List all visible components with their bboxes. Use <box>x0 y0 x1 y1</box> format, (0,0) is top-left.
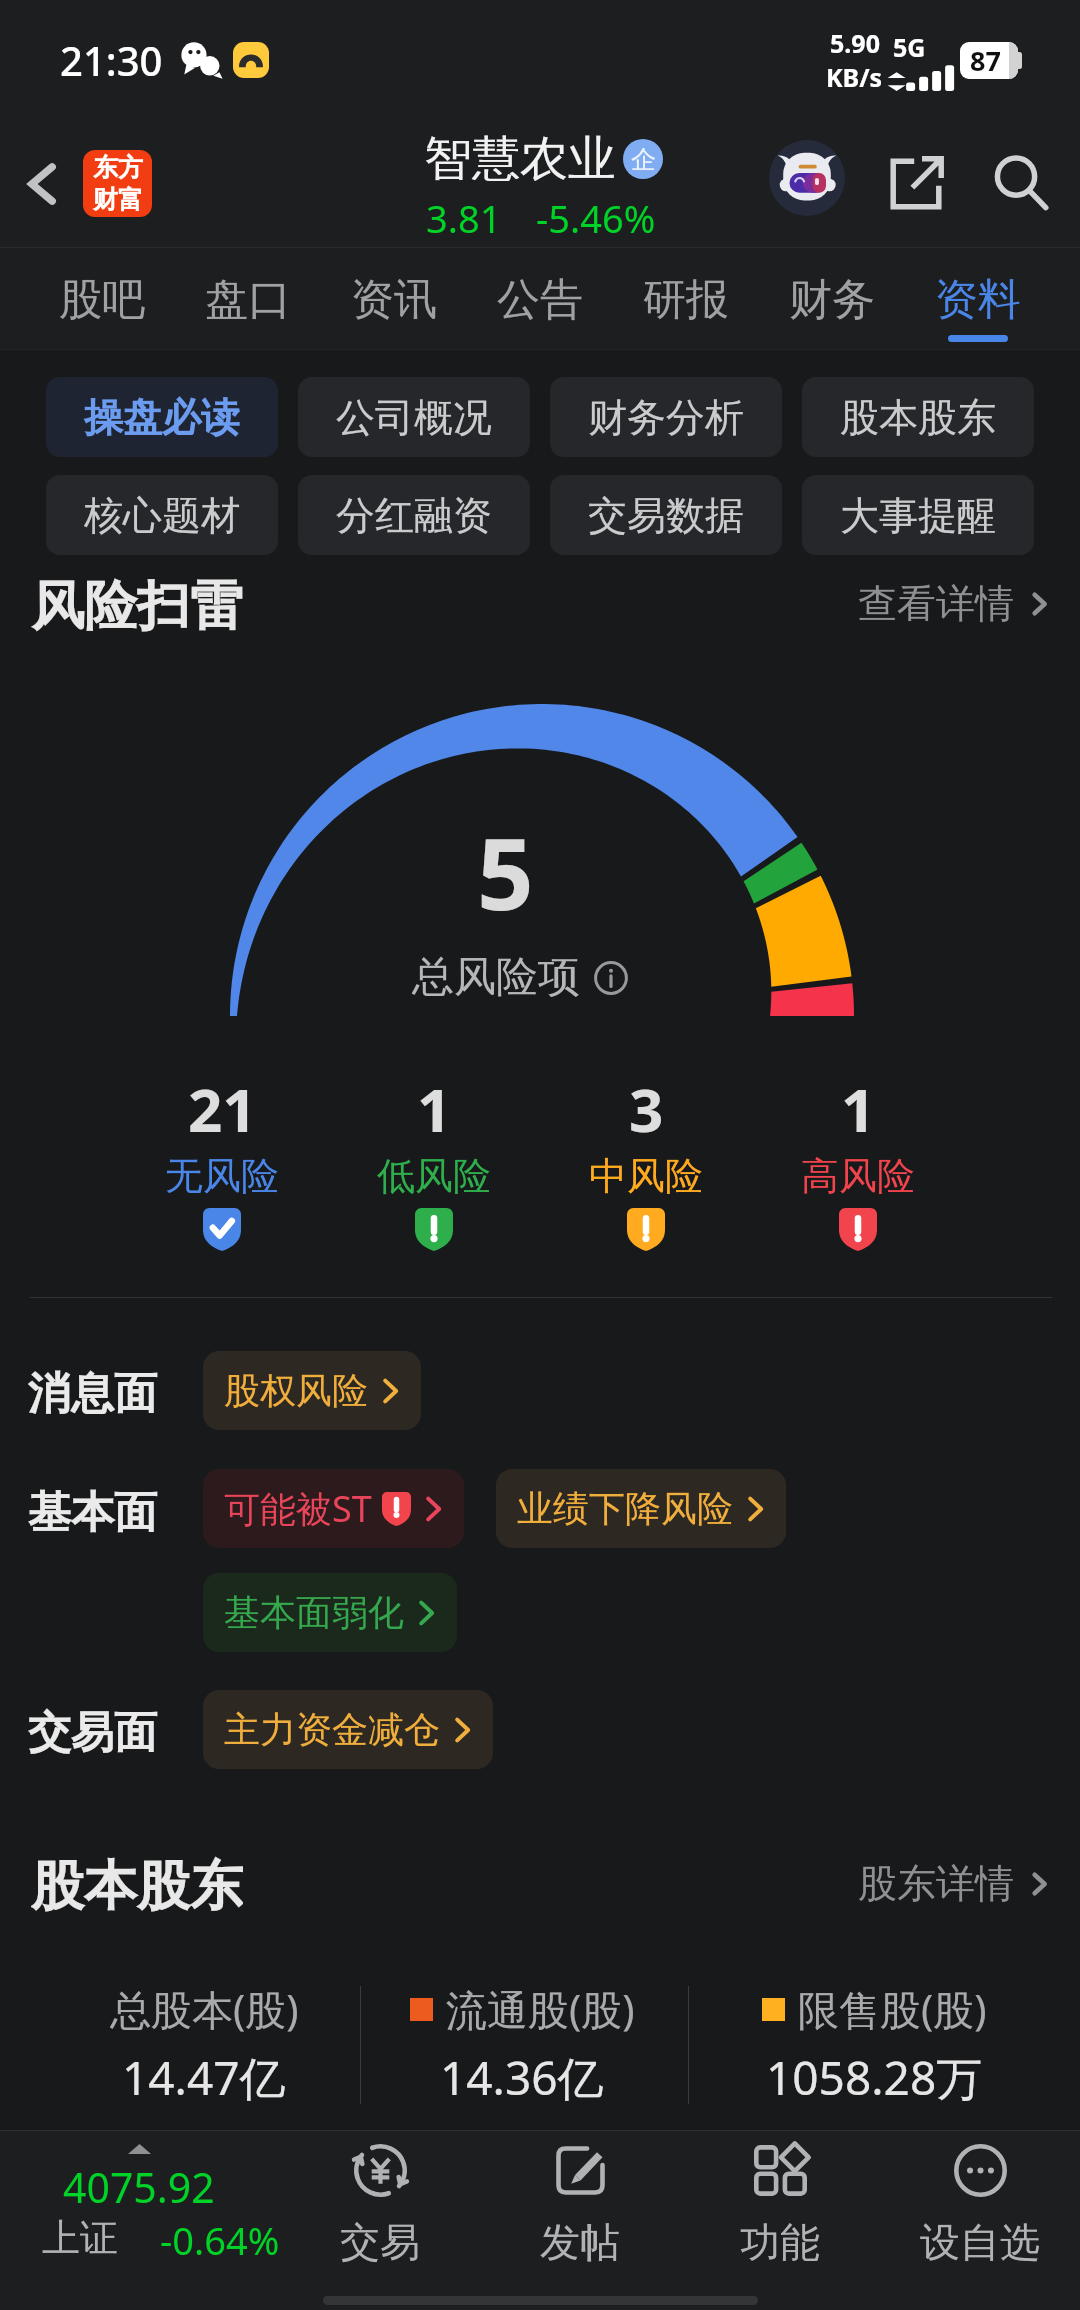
staticText: 股本股东 <box>31 1853 243 1913</box>
button[interactable]: 设自选 <box>880 2130 1080 2280</box>
button[interactable]: 股吧 <box>59 247 145 350</box>
button[interactable]: 股本股东 <box>802 377 1034 457</box>
button[interactable]: 核心题材 <box>46 475 278 555</box>
staticText: 基本面弱化 <box>224 1590 404 1635</box>
staticText: 流通股(股) <box>446 1981 635 2037</box>
staticText: 21:30 <box>60 33 163 87</box>
staticText: 4075.92 <box>63 2159 215 2215</box>
staticText: 14.47亿 <box>122 2046 286 2109</box>
button[interactable]: 交易 <box>280 2130 480 2280</box>
staticText: 交易数据 <box>588 491 744 540</box>
staticText: 智慧农业 <box>424 129 616 189</box>
staticText: 1 <box>841 1068 876 1150</box>
button[interactable]: 发帖 <box>480 2130 680 2280</box>
staticText: 财富 <box>93 184 143 215</box>
staticText: 21 <box>188 1068 257 1150</box>
staticText: 财务 <box>789 273 875 327</box>
staticText: 中风险 <box>589 1152 703 1200</box>
button[interactable]: Search <box>986 149 1056 219</box>
button[interactable]: 1 <box>328 1068 540 1251</box>
staticText: 股东详情 <box>858 1859 1014 1908</box>
staticText: 1 <box>417 1068 452 1150</box>
button[interactable]: 功能 <box>680 2130 880 2280</box>
staticText: 低风险 <box>377 1152 491 1200</box>
button[interactable]: 3 <box>540 1068 752 1251</box>
staticText: 上证 <box>42 2214 118 2262</box>
staticText: 主力资金减仓 <box>224 1707 440 1752</box>
button[interactable]: 分红融资 <box>298 475 530 555</box>
staticText: 设自选 <box>920 2217 1040 2267</box>
button[interactable]: 资讯 <box>351 247 437 350</box>
button[interactable]: AI assistant <box>769 140 845 216</box>
staticText: 资讯 <box>351 273 437 327</box>
staticText: 股吧 <box>59 273 145 327</box>
button[interactable]: 21 <box>116 1068 328 1251</box>
staticText: KB/s <box>826 60 883 94</box>
staticText: 企 <box>631 144 656 175</box>
staticText: 高风险 <box>801 1152 915 1200</box>
button[interactable]: 交易数据 <box>550 475 782 555</box>
staticText: 无风险 <box>165 1152 279 1200</box>
staticText: 股本股东 <box>840 393 996 442</box>
button[interactable]: Back <box>0 120 86 247</box>
staticText: 1058.28万 <box>766 2046 983 2109</box>
button[interactable]: 业绩下降风险 <box>496 1469 786 1548</box>
staticText: 股权风险 <box>224 1368 368 1413</box>
staticText: 业绩下降风险 <box>517 1486 733 1531</box>
button[interactable]: 限售股(股) <box>674 1975 1074 2110</box>
button[interactable]: 可能被ST <box>203 1469 464 1548</box>
button[interactable]: 流通股(股) <box>322 1975 722 2110</box>
staticText: -0.64% <box>160 2214 280 2266</box>
staticText: 3.81 <box>426 192 502 244</box>
staticText: 总风险项 <box>412 951 580 1004</box>
staticText: 功能 <box>740 2217 820 2267</box>
button[interactable]: 主力资金减仓 <box>203 1690 493 1769</box>
staticText: 87 <box>970 42 1001 79</box>
staticText: 核心题材 <box>84 491 240 540</box>
staticText: 5G <box>893 30 926 64</box>
staticText: 风险扫雷 <box>31 573 243 633</box>
staticText: 资料 <box>935 273 1021 327</box>
button[interactable]: 研报 <box>643 247 729 350</box>
staticText: 发帖 <box>540 2217 620 2267</box>
button[interactable]: 公司概况 <box>298 377 530 457</box>
button[interactable]: 4075.92 <box>0 2130 284 2280</box>
staticText: 消息面 <box>28 1367 157 1421</box>
staticText: 可能被ST <box>224 1484 372 1533</box>
button[interactable]: 财务 <box>789 247 875 350</box>
button[interactable]: Share <box>881 149 951 219</box>
button[interactable]: 资料 <box>935 247 1021 350</box>
button[interactable]: 总风险项 <box>412 951 628 1004</box>
button[interactable]: 基本面弱化 <box>203 1573 457 1652</box>
button[interactable]: 公告 <box>497 247 583 350</box>
staticText: -5.46% <box>536 192 656 244</box>
button[interactable]: 大事提醒 <box>802 475 1034 555</box>
button[interactable]: 1 <box>752 1068 964 1251</box>
staticText: 大事提醒 <box>840 491 996 540</box>
staticText: 5.90 <box>830 26 880 60</box>
staticText: 总股本(股) <box>110 1981 299 2037</box>
staticText: 研报 <box>643 273 729 327</box>
button[interactable]: 查看详情 <box>858 579 1050 628</box>
button[interactable]: 总股本(股) <box>4 1975 404 2110</box>
button[interactable]: 股权风险 <box>203 1351 421 1430</box>
staticText: 限售股(股) <box>798 1981 987 2037</box>
staticText: 东方 <box>93 152 143 183</box>
staticText: 基本面 <box>28 1486 157 1540</box>
staticText: 14.36亿 <box>440 2046 604 2109</box>
staticText: 公告 <box>497 273 583 327</box>
button[interactable]: 盘口 <box>205 247 291 350</box>
staticText: 查看详情 <box>858 579 1014 628</box>
button[interactable]: East Money <box>83 150 152 217</box>
button[interactable]: 股东详情 <box>858 1859 1050 1908</box>
button[interactable]: 操盘必读 <box>46 377 278 457</box>
button[interactable]: 财务分析 <box>550 377 782 457</box>
staticText: 财务分析 <box>588 393 744 442</box>
staticText: 操盘必读 <box>84 393 240 442</box>
staticText: 盘口 <box>205 273 291 327</box>
staticText: 5 <box>477 804 534 939</box>
staticText: 3 <box>629 1068 664 1150</box>
staticText: 交易面 <box>28 1706 157 1760</box>
staticText: 分红融资 <box>336 491 492 540</box>
staticText: 公司概况 <box>336 393 492 442</box>
